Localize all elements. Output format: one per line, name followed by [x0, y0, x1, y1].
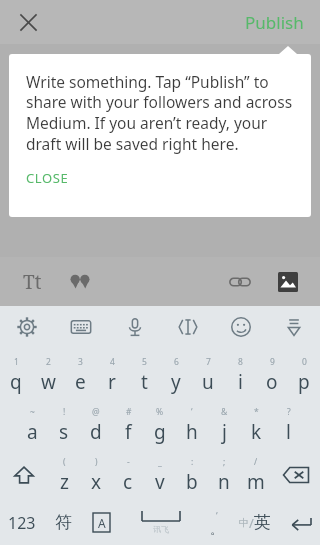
staticText: @ — [92, 406, 100, 418]
button[interactable]: 5 — [128, 350, 160, 400]
staticText: 4 — [110, 356, 115, 368]
staticText: n — [218, 469, 230, 495]
staticText: y — [171, 369, 181, 395]
button[interactable]: 3 — [64, 350, 96, 400]
button[interactable]: 0 — [288, 350, 320, 400]
staticText: 123 — [8, 512, 36, 534]
staticText: ; — [223, 456, 226, 468]
button[interactable]: ‘ — [176, 400, 208, 450]
button[interactable]: ‘ — [202, 500, 231, 545]
staticText: : — [191, 456, 194, 468]
button[interactable]: 6 — [160, 350, 192, 400]
button[interactable]: Keyboard layout — [54, 306, 108, 348]
staticText: m — [247, 469, 265, 495]
button[interactable]: 中 — [231, 500, 279, 545]
staticText: p — [298, 369, 310, 395]
staticText: 。 — [210, 521, 223, 537]
staticText: A — [98, 515, 106, 531]
staticText: l — [286, 419, 291, 445]
staticText: Publish — [245, 11, 304, 34]
staticText: ? — [287, 406, 291, 418]
staticText: ‘ — [191, 406, 193, 418]
button[interactable]: : — [176, 450, 208, 500]
button[interactable]: 4 — [96, 350, 128, 400]
button[interactable]: @ — [80, 400, 112, 450]
button[interactable]: Text style — [8, 258, 56, 306]
button[interactable]: Capitalization — [82, 500, 120, 545]
button[interactable]: Quote — [56, 258, 104, 306]
button[interactable]: Enter — [279, 500, 320, 545]
staticText: Tt — [23, 269, 42, 295]
button[interactable]: * — [240, 400, 272, 450]
button[interactable]: _ — [144, 450, 176, 500]
button[interactable]: - — [112, 450, 144, 500]
staticText: 1 — [14, 356, 19, 368]
staticText: g — [154, 419, 166, 445]
staticText: v — [155, 469, 165, 495]
staticText: j — [222, 419, 227, 445]
button[interactable]: ) — [80, 450, 112, 500]
button[interactable]: Insert link — [216, 258, 264, 306]
button[interactable]: ? — [272, 400, 304, 450]
staticText: / — [254, 456, 258, 468]
staticText: Write something. Tap “Publish” to share … — [26, 71, 295, 155]
staticText: 3 — [78, 356, 83, 368]
staticText: 中 — [239, 516, 249, 529]
button[interactable]: % — [144, 400, 176, 450]
staticText: ! — [63, 406, 66, 418]
staticText: s — [59, 419, 69, 445]
button[interactable]: 7 — [192, 350, 224, 400]
button[interactable]: & — [208, 400, 240, 450]
button[interactable]: # — [112, 400, 144, 450]
staticText: * — [254, 406, 259, 418]
button[interactable]: Voice input — [108, 306, 161, 348]
staticText: r — [108, 369, 116, 395]
button[interactable]: 2 — [32, 350, 64, 400]
staticText: w — [41, 369, 56, 395]
button[interactable]: Close editor — [8, 2, 48, 42]
staticText: - — [127, 456, 130, 468]
button[interactable]: ~ — [16, 400, 48, 450]
staticText: z — [60, 469, 69, 495]
button[interactable]: Cursor control — [161, 306, 214, 348]
staticText: d — [90, 419, 102, 445]
staticText: & — [221, 406, 228, 418]
button[interactable]: Hide keyboard — [267, 306, 320, 348]
staticText: 2 — [46, 356, 51, 368]
staticText: a — [27, 419, 38, 445]
button[interactable]: ; — [208, 450, 240, 500]
staticText: 0 — [302, 356, 307, 368]
button[interactable]: / — [240, 450, 272, 500]
staticText: h — [186, 419, 198, 445]
button[interactable]: 符 — [44, 500, 82, 545]
button[interactable]: Publish — [239, 5, 310, 40]
button[interactable]: Emoji — [214, 306, 267, 348]
staticText: # — [126, 406, 132, 418]
staticText: ~ — [30, 406, 35, 418]
staticText: o — [266, 369, 278, 395]
staticText: _ — [158, 456, 162, 468]
staticText: ‘ — [216, 509, 218, 521]
staticText: q — [10, 369, 22, 395]
button[interactable]: Space — [120, 500, 202, 545]
button[interactable]: Settings — [0, 306, 54, 348]
button[interactable]: ( — [48, 450, 80, 500]
staticText: 英 — [254, 512, 271, 533]
button[interactable]: CLOSE — [26, 169, 77, 189]
button[interactable]: 123 — [0, 500, 44, 545]
staticText: ( — [63, 456, 66, 468]
staticText: / — [249, 514, 254, 532]
button[interactable]: ! — [48, 400, 80, 450]
button[interactable]: 8 — [224, 350, 256, 400]
staticText: 讯飞 — [153, 524, 169, 534]
staticText: t — [141, 369, 148, 395]
button[interactable]: 1 — [0, 350, 32, 400]
staticText: 7 — [206, 356, 211, 368]
staticText: c — [123, 469, 133, 495]
button[interactable]: Shift — [0, 450, 48, 500]
button[interactable]: 9 — [256, 350, 288, 400]
staticText: x — [91, 469, 102, 495]
button[interactable]: Insert image — [264, 258, 312, 306]
button[interactable]: Backspace — [272, 450, 320, 500]
staticText: 符 — [55, 512, 72, 533]
